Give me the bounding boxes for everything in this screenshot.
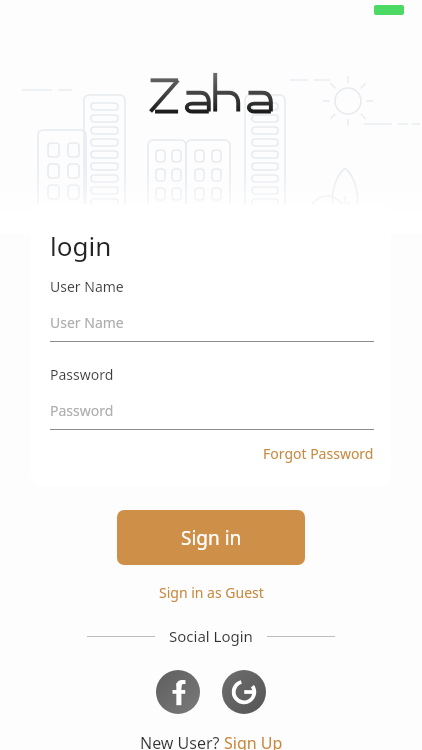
staticText: Forgot Password xyxy=(263,444,374,463)
button[interactable]: Sign in as Guest xyxy=(151,580,272,605)
staticText: Password xyxy=(50,401,114,420)
staticText: Social Login xyxy=(169,626,253,646)
staticText: Sign in xyxy=(181,525,242,551)
staticText: Sign Up xyxy=(224,732,283,750)
staticText: Password xyxy=(50,365,114,384)
button[interactable]: Forgot Password xyxy=(263,442,391,465)
button[interactable]: User Name xyxy=(50,313,374,342)
button[interactable]: Sign in with Facebook xyxy=(156,670,200,714)
staticText: New User? xyxy=(140,732,224,750)
staticText: User Name xyxy=(50,277,124,296)
staticText: User Name xyxy=(50,313,124,332)
staticText: login xyxy=(50,228,112,263)
button[interactable]: Password xyxy=(50,401,374,430)
button[interactable]: Sign Up xyxy=(224,732,283,750)
button[interactable]: Sign in xyxy=(117,510,305,565)
staticText: Sign in as Guest xyxy=(159,583,264,602)
button[interactable]: Sign in with Google xyxy=(222,670,266,714)
